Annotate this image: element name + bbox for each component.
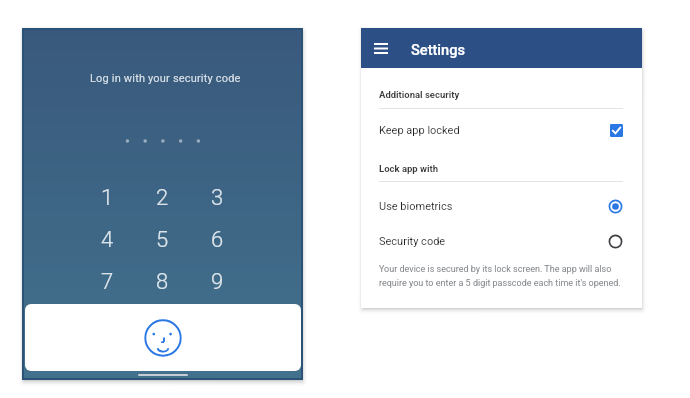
other: Face unlock (144, 319, 182, 357)
button[interactable]: 8 (135, 261, 190, 303)
staticText: 4 (101, 227, 114, 253)
button[interactable]: 6 (190, 219, 245, 261)
staticText: 1 (101, 185, 114, 211)
button[interactable]: Open navigation menu (368, 35, 394, 61)
staticText: Security code (379, 235, 446, 248)
staticText: 9 (211, 269, 224, 295)
button[interactable]: 4 (80, 219, 135, 261)
staticText: 8 (156, 269, 169, 295)
staticText: Your device is secured by its lock scree… (379, 264, 623, 289)
staticText: 5 (156, 227, 169, 253)
button[interactable]: 3 (190, 177, 245, 219)
button[interactable]: Use biometrics (379, 197, 623, 215)
button[interactable]: 7 (80, 261, 135, 303)
staticText: Lock app with (379, 163, 439, 174)
staticText: Settings (411, 41, 465, 58)
staticText: Additional security (379, 89, 460, 100)
button[interactable]: Security code (379, 232, 623, 250)
button[interactable]: Keep app locked (379, 121, 623, 139)
button[interactable]: 5 (135, 219, 190, 261)
staticText: 7 (101, 269, 114, 295)
staticText: Log in with your security code (90, 72, 241, 85)
button[interactable]: 1 (80, 177, 135, 219)
button[interactable]: 9 (190, 261, 245, 303)
staticText: 3 (211, 185, 224, 211)
button[interactable]: Face unlock (25, 304, 301, 371)
button[interactable]: 2 (135, 177, 190, 219)
staticText: 2 (156, 185, 169, 211)
staticText: 6 (211, 227, 224, 253)
staticText: Use biometrics (379, 200, 453, 213)
staticText: Keep app locked (379, 124, 460, 137)
